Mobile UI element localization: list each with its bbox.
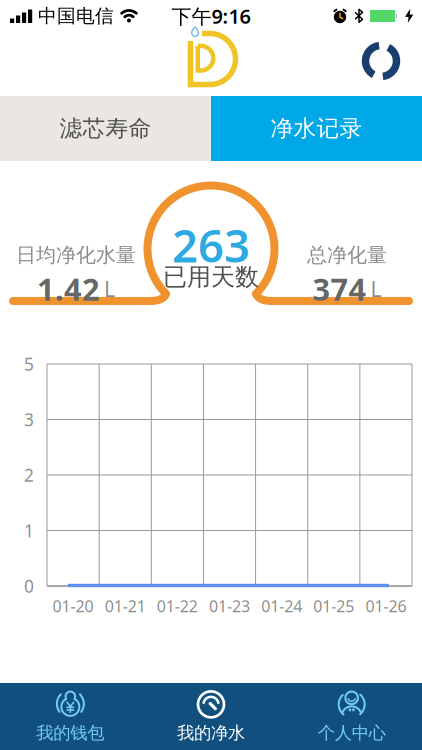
- staticText: 01-25: [313, 595, 354, 617]
- staticText: 01-26: [365, 595, 406, 617]
- staticText: 我的钱包: [36, 722, 104, 744]
- button[interactable]: [359, 39, 403, 83]
- button[interactable]: 我的净水: [141, 683, 281, 750]
- button[interactable]: 净水记录: [211, 96, 422, 161]
- staticText: L: [370, 275, 381, 303]
- button[interactable]: 我的钱包: [0, 683, 141, 750]
- staticText: 1.42: [37, 268, 100, 309]
- staticText: 下午9:16: [171, 3, 250, 29]
- staticText: 01-22: [157, 595, 198, 617]
- staticText: 0: [24, 574, 34, 597]
- staticText: 已用天数: [163, 262, 259, 292]
- staticText: 个人中心: [318, 722, 386, 744]
- button[interactable]: 个人中心: [281, 683, 422, 750]
- staticText: 滤芯寿命: [59, 115, 151, 142]
- staticText: 01-21: [105, 595, 146, 617]
- staticText: 3: [24, 408, 34, 431]
- staticText: 日均净化水量: [16, 243, 136, 267]
- staticText: 1: [24, 519, 34, 542]
- staticText: 我的净水: [177, 722, 245, 744]
- staticText: 5: [24, 352, 34, 375]
- staticText: 净水记录: [270, 115, 362, 142]
- staticText: 总净化量: [307, 243, 387, 267]
- staticText: 中国电信: [38, 4, 114, 27]
- staticText: 01-23: [209, 595, 250, 617]
- staticText: 01-20: [53, 595, 94, 617]
- staticText: 263: [172, 215, 250, 275]
- staticText: 01-24: [261, 595, 302, 617]
- staticText: L: [104, 275, 115, 303]
- staticText: 2: [24, 463, 34, 486]
- staticText: 374: [312, 268, 366, 309]
- button[interactable]: 滤芯寿命: [0, 96, 211, 161]
